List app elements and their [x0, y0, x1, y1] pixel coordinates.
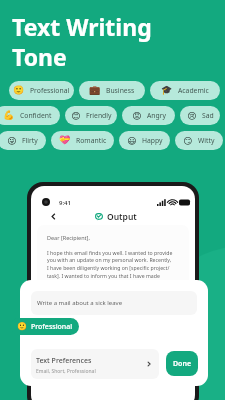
staticText: 9:41	[59, 199, 71, 207]
staticText: Output	[107, 211, 137, 223]
button[interactable]: Text Preferences	[31, 349, 159, 379]
button[interactable]: 😊	[65, 106, 117, 125]
staticText: Sad	[202, 111, 214, 120]
staticText: 🙂	[13, 85, 25, 96]
staticText: 😢	[187, 111, 197, 121]
staticText: Business	[106, 86, 135, 95]
staticText: I hope this email finds you well. I want…	[47, 249, 174, 280]
staticText: Angry	[147, 111, 166, 120]
button[interactable]: 😢	[180, 106, 220, 125]
staticText: 💪	[3, 110, 15, 121]
button[interactable]: 🙂	[9, 81, 74, 100]
staticText: Happy	[142, 136, 163, 145]
staticText: 🎓	[161, 85, 173, 96]
staticText: 😃	[127, 136, 137, 146]
staticText: 😡	[132, 111, 142, 121]
staticText: Friendly	[86, 111, 112, 120]
button[interactable]: Write a mail about a sick leave	[31, 291, 197, 315]
staticText: Romantic	[76, 136, 107, 145]
staticText: Write a mail about a sick leave	[37, 299, 123, 307]
button[interactable]: 💼	[79, 81, 145, 100]
button[interactable]: 🎓	[150, 81, 220, 100]
staticText: 😜	[7, 136, 17, 146]
staticText: Academic	[178, 86, 209, 95]
staticText: Confident	[20, 111, 52, 120]
staticText: Professional	[31, 322, 73, 332]
staticText: Dear [Recipient],	[47, 234, 90, 241]
button[interactable]: 💝	[51, 131, 114, 150]
staticText: 💼	[89, 85, 101, 96]
staticText: Text Writing Tone	[12, 11, 152, 72]
staticText: Done	[173, 359, 192, 369]
staticText: Text Preferences	[36, 356, 92, 366]
button[interactable]: 🙂	[10, 318, 79, 335]
staticText: 😏	[183, 136, 193, 146]
staticText: Professional	[30, 86, 70, 95]
button[interactable]: Done	[166, 351, 198, 376]
button[interactable]: 😃	[119, 131, 170, 150]
button[interactable]: Back	[45, 208, 61, 224]
button[interactable]: 😜	[0, 131, 46, 150]
staticText: 💝	[59, 135, 71, 146]
button[interactable]: 💪	[0, 106, 60, 125]
staticText: 🙂	[17, 322, 27, 331]
button[interactable]: 😏	[175, 131, 223, 150]
staticText: Email, Short, Professional	[36, 368, 96, 375]
button[interactable]: 😡	[122, 106, 175, 125]
staticText: Flirty	[22, 136, 38, 145]
staticText: 😊	[71, 111, 81, 121]
staticText: Witty	[198, 136, 215, 145]
